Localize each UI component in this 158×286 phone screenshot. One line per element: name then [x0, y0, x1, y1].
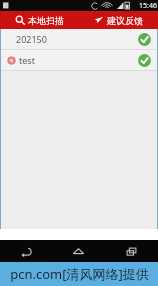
- button[interactable]: 建议反馈: [79, 11, 158, 29]
- staticText: 建议反馈: [107, 15, 143, 26]
- button[interactable]: 202150: [1, 29, 157, 49]
- staticText: 202150: [16, 33, 138, 45]
- button[interactable]: Recent apps: [105, 240, 158, 262]
- button[interactable]: Home: [52, 240, 105, 262]
- staticText: test: [19, 54, 138, 66]
- staticText: pcn.com[清风网络]提供: [10, 265, 149, 283]
- other: Selected: [138, 33, 151, 46]
- button[interactable]: Back: [0, 240, 52, 262]
- other: Selected: [138, 54, 151, 67]
- button[interactable]: 本地扫描: [0, 11, 79, 29]
- button[interactable]: test: [1, 50, 157, 70]
- staticText: 本地扫描: [28, 15, 64, 26]
- staticText: 15:46: [139, 1, 157, 11]
